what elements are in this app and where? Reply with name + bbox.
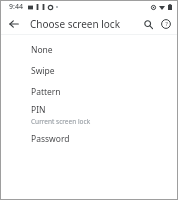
staticText: Password [31, 133, 70, 145]
staticText: ? [165, 20, 168, 28]
button[interactable]: Help [157, 15, 175, 33]
staticText: Swipe [31, 65, 55, 77]
button[interactable]: Swipe [0, 60, 178, 81]
button[interactable]: Password [0, 128, 178, 149]
button[interactable]: PIN [0, 102, 178, 128]
staticText: PIN [31, 104, 46, 116]
staticText: 9:44 [9, 2, 23, 12]
staticText: Choose screen lock [30, 17, 120, 31]
staticText: Current screen lock [31, 117, 91, 126]
staticText: Pattern [31, 86, 61, 98]
staticText: None [31, 44, 53, 56]
button[interactable]: Back [6, 16, 22, 32]
button[interactable]: Search [139, 15, 157, 33]
button[interactable]: None [0, 39, 178, 60]
button[interactable]: Pattern [0, 81, 178, 102]
